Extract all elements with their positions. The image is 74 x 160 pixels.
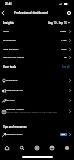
button[interactable]: Aug 10 - Sep 10 [48, 21, 70, 24]
staticText: Total followers [3, 48, 19, 51]
staticText: 20:46 [5, 2, 12, 6]
button[interactable]: Total followers [0, 45, 74, 54]
staticText: Aug 10 - Sep 10 [48, 21, 67, 24]
staticText: Your tools [3, 65, 17, 69]
staticText: Branded content [6, 108, 25, 111]
button[interactable]: Inspiration [0, 75, 74, 85]
staticText: 28 [64, 56, 67, 59]
button[interactable]: Partnership ads [0, 85, 74, 95]
staticText: Trending audio [6, 133, 23, 136]
staticText: Content you shared [3, 56, 25, 59]
staticText: Professional dashboard [14, 11, 48, 15]
button[interactable]: Back [0, 4, 9, 22]
button[interactable]: Create [29, 141, 44, 154]
button[interactable]: Search [14, 141, 29, 154]
button[interactable]: Trending audio [0, 129, 74, 139]
staticText: Ad tools [6, 99, 15, 102]
button[interactable]: See all [62, 65, 70, 68]
button[interactable]: Information [63, 4, 74, 22]
button[interactable]: Home [0, 141, 14, 154]
staticText: Partner with a brand or creator for your… [6, 111, 67, 114]
button[interactable]: Ad tools [0, 95, 74, 105]
staticText: Views [3, 30, 10, 33]
button[interactable]: Reels [44, 141, 59, 154]
button[interactable]: Content you shared [0, 53, 74, 62]
staticText: 182K [61, 48, 67, 51]
staticText: Interactions [3, 39, 16, 42]
staticText: 1.7M [61, 39, 67, 42]
button[interactable]: Views [0, 27, 74, 36]
staticText: Tips and resources [3, 125, 27, 128]
button[interactable]: Interactions [0, 36, 74, 45]
button[interactable]: Profile [59, 141, 74, 154]
staticText: New [61, 133, 66, 136]
staticText: Insights [3, 21, 14, 25]
staticText: 248M [60, 30, 67, 33]
staticText: Inspiration [6, 79, 18, 82]
button[interactable]: Branded content [0, 105, 74, 117]
staticText: Partnership ads [6, 89, 24, 92]
